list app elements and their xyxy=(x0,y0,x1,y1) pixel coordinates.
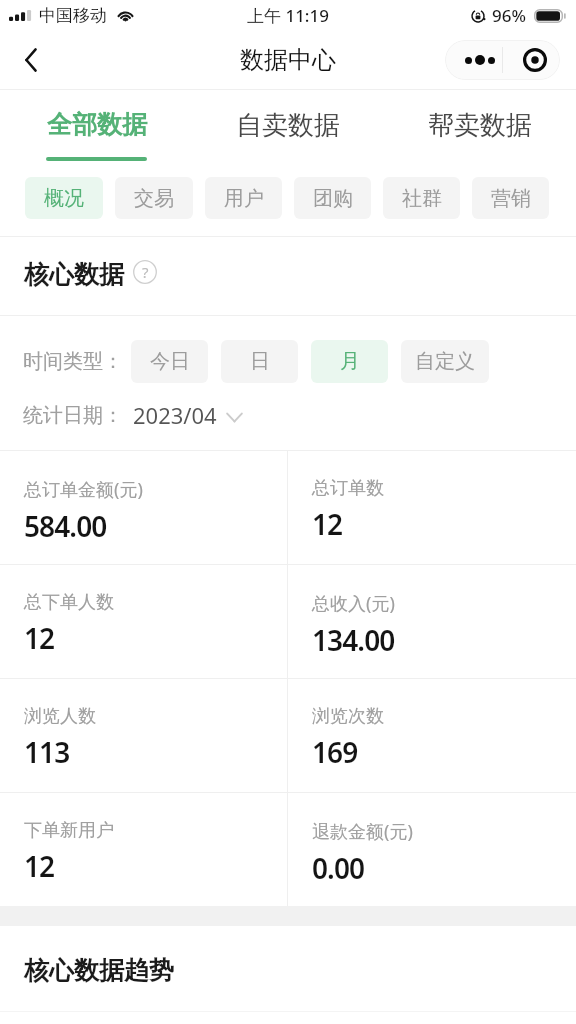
staticText: 团购 xyxy=(313,186,353,211)
staticText: 核心数据趋势 xyxy=(24,955,174,986)
button[interactable]: Back xyxy=(9,38,53,82)
staticText: 自卖数据 xyxy=(236,109,340,142)
staticText: 帮卖数据 xyxy=(428,109,532,142)
staticText: ? xyxy=(142,262,149,282)
button[interactable]: 总订单数 xyxy=(288,451,576,564)
button[interactable]: 全部数据 xyxy=(0,90,192,166)
button[interactable]: 退款金额(元) xyxy=(288,793,576,906)
button[interactable]: 社群 xyxy=(383,177,460,219)
staticText: 月 xyxy=(340,349,360,374)
button[interactable]: Close xyxy=(503,40,560,80)
staticText: 113 xyxy=(24,733,70,771)
staticText: 社群 xyxy=(402,186,442,211)
staticText: 总收入(元) xyxy=(312,591,395,616)
staticText: 总订单数 xyxy=(312,477,384,500)
button[interactable]: 帮卖数据 xyxy=(384,90,576,166)
button[interactable]: More options xyxy=(445,40,502,80)
button[interactable]: 2023/04 xyxy=(133,400,243,430)
button[interactable]: 自定义 xyxy=(401,340,489,383)
button[interactable]: 交易 xyxy=(115,177,193,219)
staticText: 12 xyxy=(312,505,343,543)
staticText: 概况 xyxy=(44,186,84,211)
staticText: 169 xyxy=(312,733,358,771)
staticText: 134.00 xyxy=(312,621,395,659)
staticText: 今日 xyxy=(150,349,190,374)
button[interactable]: 总订单金额(元) xyxy=(0,451,287,564)
staticText: 2023/04 xyxy=(133,400,217,430)
staticText: 退款金额(元) xyxy=(312,819,413,844)
staticText: 时间类型： xyxy=(23,349,123,374)
staticText: 统计日期： xyxy=(23,403,123,428)
staticText: 全部数据 xyxy=(47,109,147,140)
staticText: 0.00 xyxy=(312,849,365,887)
staticText: 12 xyxy=(24,619,55,657)
button[interactable]: 下单新用户 xyxy=(0,793,287,906)
staticText: 12 xyxy=(24,847,55,885)
button[interactable]: 浏览次数 xyxy=(288,679,576,792)
staticText: 用户 xyxy=(224,186,264,211)
button[interactable]: 团购 xyxy=(294,177,371,219)
button[interactable]: 用户 xyxy=(205,177,282,219)
button[interactable]: 总收入(元) xyxy=(288,565,576,678)
staticText: 下单新用户 xyxy=(24,819,114,842)
button[interactable]: 浏览人数 xyxy=(0,679,287,792)
staticText: 浏览人数 xyxy=(24,705,96,728)
staticText: 上午 11:19 xyxy=(247,4,329,27)
button[interactable]: 月 xyxy=(311,340,388,383)
staticText: 96% xyxy=(492,4,526,27)
staticText: 日 xyxy=(250,349,270,374)
staticText: 总订单金额(元) xyxy=(24,477,143,502)
staticText: 总下单人数 xyxy=(24,591,114,614)
staticText: 浏览次数 xyxy=(312,705,384,728)
staticText: 中国移动 xyxy=(39,5,107,26)
staticText: 核心数据 xyxy=(24,259,124,290)
staticText: 营销 xyxy=(491,186,531,211)
staticText: 交易 xyxy=(134,186,174,211)
staticText: 584.00 xyxy=(24,507,107,545)
button[interactable]: 日 xyxy=(221,340,298,383)
staticText: 自定义 xyxy=(415,349,475,374)
button[interactable]: 概况 xyxy=(25,177,103,219)
button[interactable]: 今日 xyxy=(131,340,208,383)
button[interactable]: 自卖数据 xyxy=(192,90,384,166)
button[interactable]: 总下单人数 xyxy=(0,565,287,678)
staticText: 数据中心 xyxy=(240,45,336,75)
button[interactable]: 营销 xyxy=(472,177,549,219)
button[interactable]: Help xyxy=(133,260,157,284)
